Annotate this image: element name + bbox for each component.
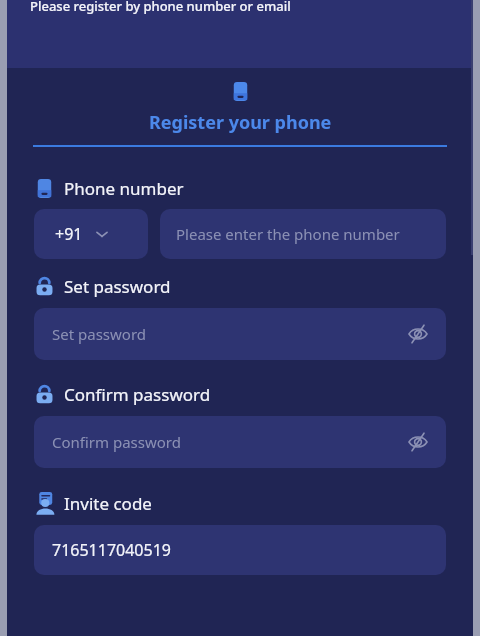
staticText: Confirm password	[64, 383, 211, 406]
button[interactable]: Show password	[404, 428, 432, 456]
staticText: Set password	[64, 275, 171, 298]
staticText: Phone number	[64, 177, 184, 200]
staticText: Invite code	[64, 492, 152, 515]
button[interactable]: Set password	[34, 308, 446, 360]
staticText: Please register by phone number or email	[30, 0, 291, 15]
button[interactable]: Country code +91	[34, 209, 148, 259]
staticText: Confirm password	[52, 432, 181, 452]
staticText: Register your phone	[149, 110, 332, 135]
staticText: Please enter the phone number	[176, 224, 400, 244]
staticText: +91	[55, 223, 83, 245]
button[interactable]: 7165117040519	[34, 525, 446, 575]
staticText: 7165117040519	[52, 539, 171, 561]
button[interactable]: Please enter the phone number	[160, 209, 446, 259]
button[interactable]: Confirm password	[34, 416, 446, 468]
button[interactable]: Show password	[404, 320, 432, 348]
staticText: Set password	[52, 324, 147, 344]
button[interactable]: Register your phone	[149, 81, 332, 135]
